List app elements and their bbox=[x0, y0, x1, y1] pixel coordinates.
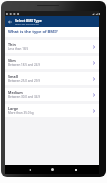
button[interactable]: Medium bbox=[5, 88, 99, 101]
staticText: Between 18.5 and 24.9 bbox=[8, 63, 40, 67]
staticText: Small bbox=[8, 74, 18, 79]
button[interactable]: Navigate up bbox=[5, 16, 15, 27]
staticText: Less than 18.5 bbox=[8, 47, 29, 51]
button[interactable]: Large bbox=[5, 104, 99, 117]
button[interactable]: Back bbox=[25, 165, 34, 174]
staticText: select any one from list bbox=[15, 23, 39, 26]
staticText: Select BMI Type bbox=[15, 18, 42, 23]
staticText: What is the type of BMI? bbox=[8, 29, 58, 35]
button[interactable]: Home bbox=[48, 165, 57, 174]
staticText: Large bbox=[8, 106, 19, 111]
staticText: Between 30.0 and 34.9 bbox=[8, 95, 40, 99]
staticText: Between 25.0 and 29.9 bbox=[8, 79, 40, 83]
button[interactable]: Small bbox=[5, 72, 99, 85]
staticText: Slim bbox=[8, 58, 16, 63]
button[interactable]: Slim bbox=[5, 56, 99, 69]
staticText: More than 35.0 kg bbox=[8, 111, 34, 115]
button[interactable]: Recent apps bbox=[71, 165, 80, 174]
staticText: Thin bbox=[8, 42, 16, 47]
button[interactable]: Thin bbox=[5, 40, 99, 53]
staticText: Medium bbox=[8, 90, 23, 95]
